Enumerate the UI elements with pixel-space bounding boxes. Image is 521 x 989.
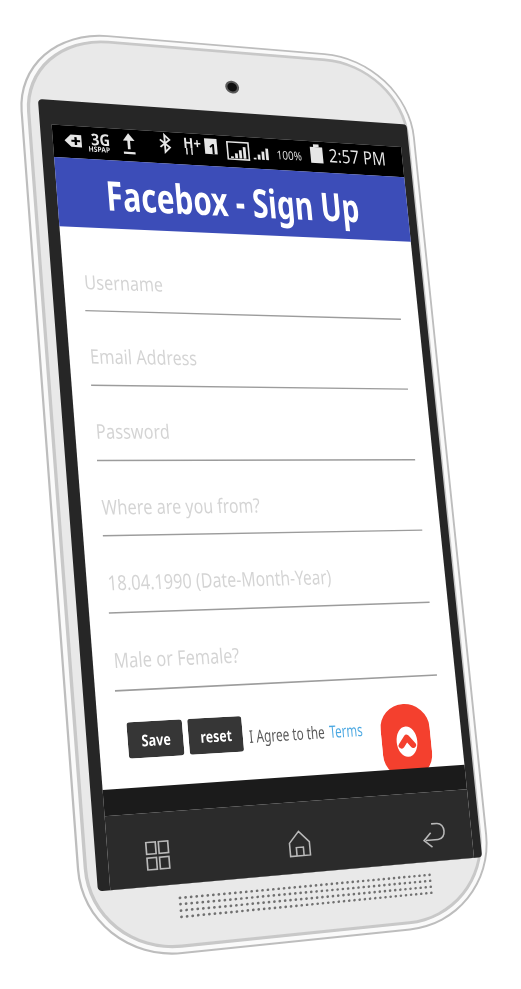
button[interactable]: Recent apps	[120, 832, 195, 880]
staticText: Password	[95, 417, 171, 445]
staticText: HSPAP	[88, 144, 111, 156]
staticText: Facebox - Sign Up	[104, 166, 362, 234]
staticText: Terms	[328, 718, 364, 743]
staticText: 1	[208, 138, 217, 158]
staticText: Male or Female?	[112, 640, 241, 674]
staticText: 3G	[90, 128, 112, 151]
staticText: I Agree to the	[248, 720, 326, 748]
staticText: 18.04.1990 (Date-Month-Year)	[106, 563, 333, 597]
staticText: Username	[83, 268, 164, 297]
staticText: Email Address	[89, 342, 198, 371]
staticText: Where are you from?	[101, 491, 262, 521]
button[interactable]: Home	[263, 821, 335, 867]
button[interactable]: Save	[126, 719, 185, 759]
button[interactable]	[82, 264, 402, 330]
button[interactable]	[87, 338, 409, 400]
button[interactable]: Back	[399, 811, 467, 856]
button[interactable]: Scroll to top	[378, 703, 435, 780]
button[interactable]	[99, 485, 423, 548]
staticText: reset	[199, 724, 233, 747]
button[interactable]	[111, 629, 438, 703]
button[interactable]	[93, 413, 416, 473]
staticText: 100%	[276, 146, 303, 164]
button[interactable]: Terms	[328, 718, 364, 743]
staticText: 2:57 PM	[327, 142, 387, 171]
staticText: H+	[182, 132, 202, 153]
button[interactable]: reset	[187, 716, 244, 755]
staticText: Save	[140, 727, 172, 751]
button[interactable]	[105, 557, 431, 625]
